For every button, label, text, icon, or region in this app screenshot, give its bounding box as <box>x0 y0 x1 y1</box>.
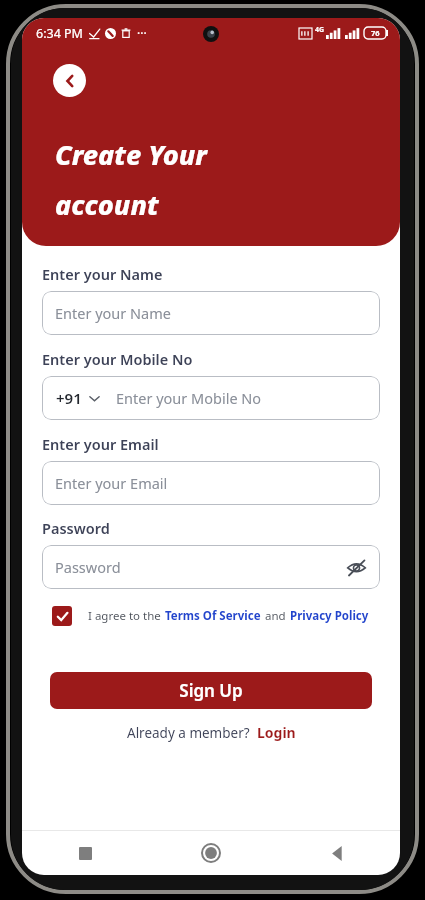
staticText: Terms Of Service <box>165 608 261 624</box>
staticText: Enter your Email <box>55 473 168 493</box>
button[interactable]: Recent apps <box>22 831 148 875</box>
button[interactable]: Back <box>53 64 86 97</box>
staticText: Privacy Policy <box>290 608 369 624</box>
button[interactable]: Privacy Policy <box>290 608 369 624</box>
staticText: 6:34 PM <box>36 25 83 42</box>
staticText: Enter your Name <box>55 303 171 323</box>
button[interactable]: Agree to terms <box>52 606 72 626</box>
staticText: 76 <box>371 28 380 38</box>
staticText: Enter your Email <box>42 434 159 454</box>
button[interactable]: Enter your Email <box>42 461 380 505</box>
button[interactable]: Home <box>148 831 274 875</box>
button[interactable]: Sign Up <box>50 672 372 709</box>
button[interactable]: Enter your Name <box>42 291 380 335</box>
staticText: Enter your Mobile No <box>42 349 193 369</box>
staticText: and <box>265 608 286 624</box>
staticText: ··· <box>137 25 147 41</box>
button[interactable]: Terms Of Service <box>165 608 261 624</box>
staticText: Already a member? <box>127 724 250 742</box>
staticText: Sign Up <box>179 679 243 702</box>
staticText: account <box>55 186 159 223</box>
button[interactable]: Password <box>42 545 380 589</box>
staticText: Enter your Mobile No <box>116 388 262 408</box>
staticText: Login <box>257 723 296 742</box>
button[interactable]: Back <box>274 831 400 875</box>
button[interactable]: Login <box>257 723 296 742</box>
staticText: Password <box>55 557 121 577</box>
staticText: Password <box>42 518 110 538</box>
staticText: 4G <box>315 25 325 35</box>
staticText: Enter your Name <box>42 264 163 284</box>
staticText: Create Your <box>55 136 207 173</box>
button[interactable]: Show password <box>342 553 370 581</box>
staticText: +91 <box>56 388 82 408</box>
staticText: I agree to the <box>88 608 161 624</box>
button[interactable]: +91 <box>42 376 380 420</box>
